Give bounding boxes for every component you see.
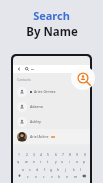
staticText: y xyxy=(55,159,57,163)
staticText: By Name xyxy=(26,24,78,40)
staticText: Ariel Arline xyxy=(30,134,49,139)
staticText: Aries Grimes xyxy=(34,89,56,94)
staticText: a xyxy=(22,167,24,171)
staticText: Search xyxy=(33,8,70,23)
staticText: t xyxy=(47,159,49,163)
button[interactable]: i xyxy=(67,158,72,163)
button[interactable]: 6 xyxy=(53,151,58,156)
button[interactable]: b xyxy=(57,173,62,178)
button[interactable]: Ariel Arline xyxy=(17,129,90,144)
button[interactable]: 2 xyxy=(24,151,29,156)
button[interactable]: t xyxy=(45,158,50,163)
staticText: Adaena xyxy=(30,104,43,109)
staticText: Ashley xyxy=(30,119,41,124)
button[interactable]: 8 xyxy=(67,151,72,156)
staticText: 9 xyxy=(76,152,78,156)
button[interactable]: x xyxy=(33,173,38,178)
button[interactable]: o xyxy=(74,158,79,163)
staticText: x xyxy=(35,174,37,178)
other: Back xyxy=(17,67,21,71)
staticText: 8 xyxy=(69,152,71,156)
button[interactable]: p xyxy=(82,158,87,163)
button[interactable]: a xyxy=(20,166,25,171)
button[interactable]: y xyxy=(53,158,58,163)
staticText: k xyxy=(73,167,75,171)
other: Search xyxy=(25,67,29,71)
staticText: j xyxy=(65,167,66,171)
staticText: l xyxy=(80,167,81,171)
staticText: f xyxy=(44,167,46,171)
button[interactable]: 7 xyxy=(60,151,65,156)
button[interactable]: s xyxy=(27,166,32,171)
button[interactable]: m xyxy=(73,173,78,178)
button[interactable]: e xyxy=(31,158,36,163)
staticText: 4 xyxy=(40,152,42,156)
button[interactable]: Adaena xyxy=(17,99,90,114)
staticText: g xyxy=(50,167,53,171)
staticText: n xyxy=(66,174,69,178)
staticText: i xyxy=(69,159,70,163)
staticText: Contacts xyxy=(17,77,31,81)
button[interactable]: k xyxy=(71,166,76,171)
button[interactable]: Ashley xyxy=(17,114,90,129)
button[interactable]: 9 xyxy=(74,151,79,156)
staticText: v xyxy=(51,174,53,178)
button[interactable]: r xyxy=(38,158,43,163)
button[interactable]: Back xyxy=(13,65,90,73)
staticText: p xyxy=(83,159,86,163)
button[interactable]: d xyxy=(35,166,40,171)
staticText: e xyxy=(33,159,35,163)
staticText: w xyxy=(25,159,28,163)
staticText: q xyxy=(17,159,20,163)
button[interactable]: 3 xyxy=(31,151,36,156)
button[interactable]: v xyxy=(49,173,54,178)
staticText: b xyxy=(58,174,61,178)
staticText: 3 xyxy=(33,152,35,156)
button[interactable]: Aries Grimes xyxy=(17,84,90,99)
button[interactable]: 0 xyxy=(82,151,87,156)
button[interactable]: c xyxy=(41,173,46,178)
staticText: 0 xyxy=(84,152,86,156)
button[interactable]: Search contacts xyxy=(71,66,95,90)
button[interactable]: n xyxy=(65,173,70,178)
staticText: d xyxy=(36,167,39,171)
button[interactable]: w xyxy=(24,158,29,163)
button[interactable]: g xyxy=(49,166,54,171)
button[interactable]: Shift xyxy=(17,173,22,178)
staticText: o xyxy=(76,159,78,163)
button[interactable]: 4 xyxy=(38,151,43,156)
button[interactable]: u xyxy=(60,158,65,163)
staticText: c xyxy=(43,174,45,178)
staticText: u xyxy=(61,159,64,163)
button[interactable]: q xyxy=(16,158,21,163)
staticText: h xyxy=(57,167,60,171)
staticText: s xyxy=(29,167,31,171)
staticText: 1 xyxy=(18,152,20,156)
staticText: 5 xyxy=(47,152,49,156)
button[interactable]: f xyxy=(42,166,47,171)
staticText: 2 xyxy=(26,152,28,156)
staticText: 6 xyxy=(55,152,57,156)
button[interactable]: h xyxy=(56,166,61,171)
button[interactable]: Backspace xyxy=(81,173,86,178)
staticText: r xyxy=(40,159,42,163)
button[interactable]: j xyxy=(63,166,68,171)
button[interactable]: 5 xyxy=(45,151,50,156)
button[interactable]: z xyxy=(25,173,30,178)
button[interactable]: 1 xyxy=(16,151,21,156)
staticText: 7 xyxy=(62,152,64,156)
staticText: z xyxy=(27,174,29,178)
staticText: m xyxy=(74,174,78,178)
button[interactable]: l xyxy=(78,166,83,171)
